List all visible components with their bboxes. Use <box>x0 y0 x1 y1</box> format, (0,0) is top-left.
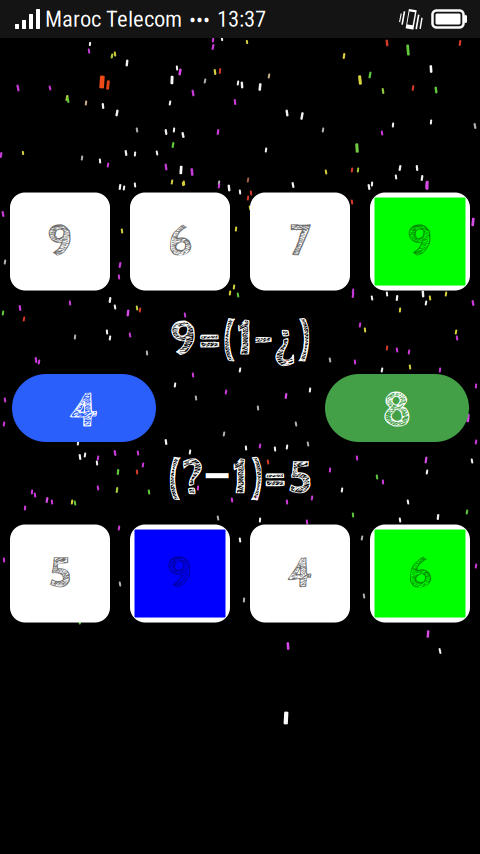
staticText: 6 <box>408 548 432 599</box>
staticText: 9 <box>407 216 432 267</box>
staticText: 9=(1-¿) <box>170 312 310 368</box>
button[interactable]: 4 <box>250 524 350 622</box>
staticText: 13:37 <box>217 6 266 32</box>
button[interactable]: 7 <box>250 192 350 290</box>
staticText: 9 <box>167 548 192 599</box>
staticText: (?−1)=5 <box>167 442 312 506</box>
button[interactable]: 9 <box>370 192 470 290</box>
staticText: 4 <box>69 381 98 441</box>
button[interactable]: 4 <box>12 374 156 442</box>
button[interactable]: 9 <box>10 192 110 290</box>
staticText: 7 <box>289 216 310 267</box>
button[interactable]: 9 <box>130 524 230 622</box>
staticText: 5 <box>48 548 71 599</box>
button[interactable]: 6 <box>370 524 470 622</box>
staticText: ••• <box>189 7 210 31</box>
button[interactable]: 6 <box>130 192 230 290</box>
staticText: 6 <box>168 216 192 267</box>
button[interactable]: 8 <box>325 374 469 442</box>
button[interactable]: 5 <box>10 524 110 622</box>
staticText: Maroc Telecom <box>45 6 182 32</box>
staticText: 9 <box>47 216 72 267</box>
staticText: 4 <box>287 548 312 599</box>
staticText: 8 <box>382 381 412 441</box>
